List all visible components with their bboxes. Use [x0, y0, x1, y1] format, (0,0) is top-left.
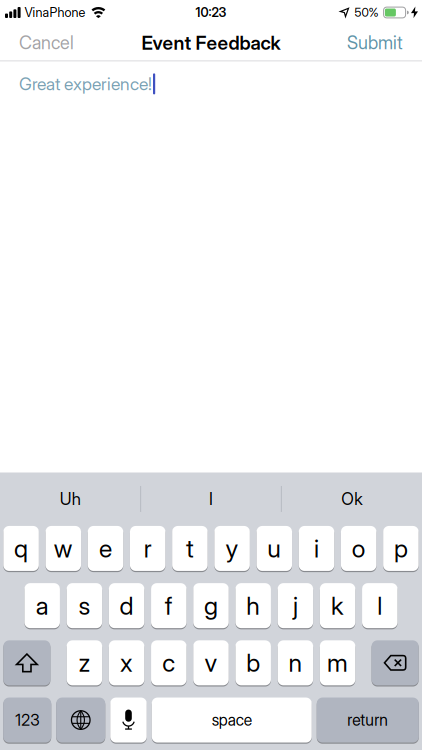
button[interactable]: t [172, 526, 208, 571]
button[interactable]: m [320, 640, 355, 685]
staticText: o [352, 533, 366, 563]
button[interactable]: d [109, 583, 144, 628]
button[interactable]: return [317, 698, 419, 743]
button[interactable]: c [151, 640, 187, 685]
button[interactable]: n [278, 640, 313, 685]
button[interactable]: q [3, 526, 39, 571]
staticText: VinaPhone [25, 5, 86, 20]
button[interactable]: Delete [372, 640, 419, 685]
staticText: n [288, 648, 302, 678]
staticText: f [165, 591, 173, 621]
button[interactable]: v [193, 640, 229, 685]
staticText: k [331, 591, 344, 621]
staticText: q [14, 533, 28, 563]
button[interactable]: Submit [347, 32, 403, 54]
button[interactable]: Next keyboard [56, 698, 105, 743]
button[interactable]: k [320, 583, 355, 628]
staticText: 10:23 [195, 5, 226, 20]
button[interactable]: space [152, 698, 312, 743]
staticText: h [246, 591, 260, 621]
staticText: d [120, 591, 134, 621]
button[interactable]: j [278, 583, 313, 628]
staticText: u [267, 533, 281, 563]
staticText: x [120, 648, 133, 678]
staticText: y [226, 533, 239, 563]
button[interactable]: r [130, 526, 165, 571]
button[interactable]: Cancel [19, 32, 74, 54]
button[interactable]: p [383, 526, 419, 571]
button[interactable]: o [341, 526, 376, 571]
staticText: Event Feedback [141, 31, 280, 54]
staticText: t [186, 533, 194, 563]
staticText: b [246, 648, 260, 678]
staticText: Cancel [19, 32, 74, 54]
button[interactable]: Ok [282, 472, 422, 526]
button[interactable]: w [45, 526, 81, 571]
button[interactable]: Uh [0, 472, 140, 526]
button[interactable]: g [193, 583, 229, 628]
button[interactable]: Shift [3, 640, 50, 685]
staticText: r [144, 533, 152, 563]
staticText: 50% [355, 5, 379, 20]
button[interactable]: f [151, 583, 187, 628]
staticText: l [377, 591, 382, 621]
staticText: c [162, 648, 175, 678]
staticText: v [204, 648, 217, 678]
staticText: Uh [60, 489, 81, 509]
staticText: s [78, 591, 90, 621]
button[interactable]: x [109, 640, 144, 685]
button[interactable]: a [24, 583, 60, 628]
button[interactable]: e [88, 526, 123, 571]
button[interactable]: z [67, 640, 102, 685]
staticText: j [293, 591, 298, 621]
staticText: g [204, 591, 218, 621]
staticText: m [327, 648, 348, 678]
staticText: e [99, 533, 112, 563]
staticText: space [212, 711, 252, 730]
button[interactable]: i [299, 526, 334, 571]
button[interactable]: l [362, 583, 397, 628]
button[interactable]: 123 [3, 698, 51, 743]
staticText: a [36, 591, 49, 621]
button[interactable]: b [235, 640, 271, 685]
button[interactable]: u [256, 526, 292, 571]
staticText: I [209, 489, 213, 509]
button[interactable]: I [141, 472, 281, 526]
staticText: 123 [15, 711, 39, 730]
staticText: i [314, 533, 319, 563]
staticText: p [394, 533, 408, 563]
staticText: Submit [347, 32, 403, 54]
button[interactable]: Dictate [110, 698, 147, 743]
button[interactable]: s [67, 583, 102, 628]
staticText: Great experience! [19, 73, 152, 94]
staticText: w [54, 533, 73, 563]
staticText: Ok [341, 489, 362, 509]
staticText: z [78, 648, 90, 678]
staticText: return [347, 711, 388, 730]
button[interactable]: h [235, 583, 271, 628]
button[interactable]: y [214, 526, 250, 571]
